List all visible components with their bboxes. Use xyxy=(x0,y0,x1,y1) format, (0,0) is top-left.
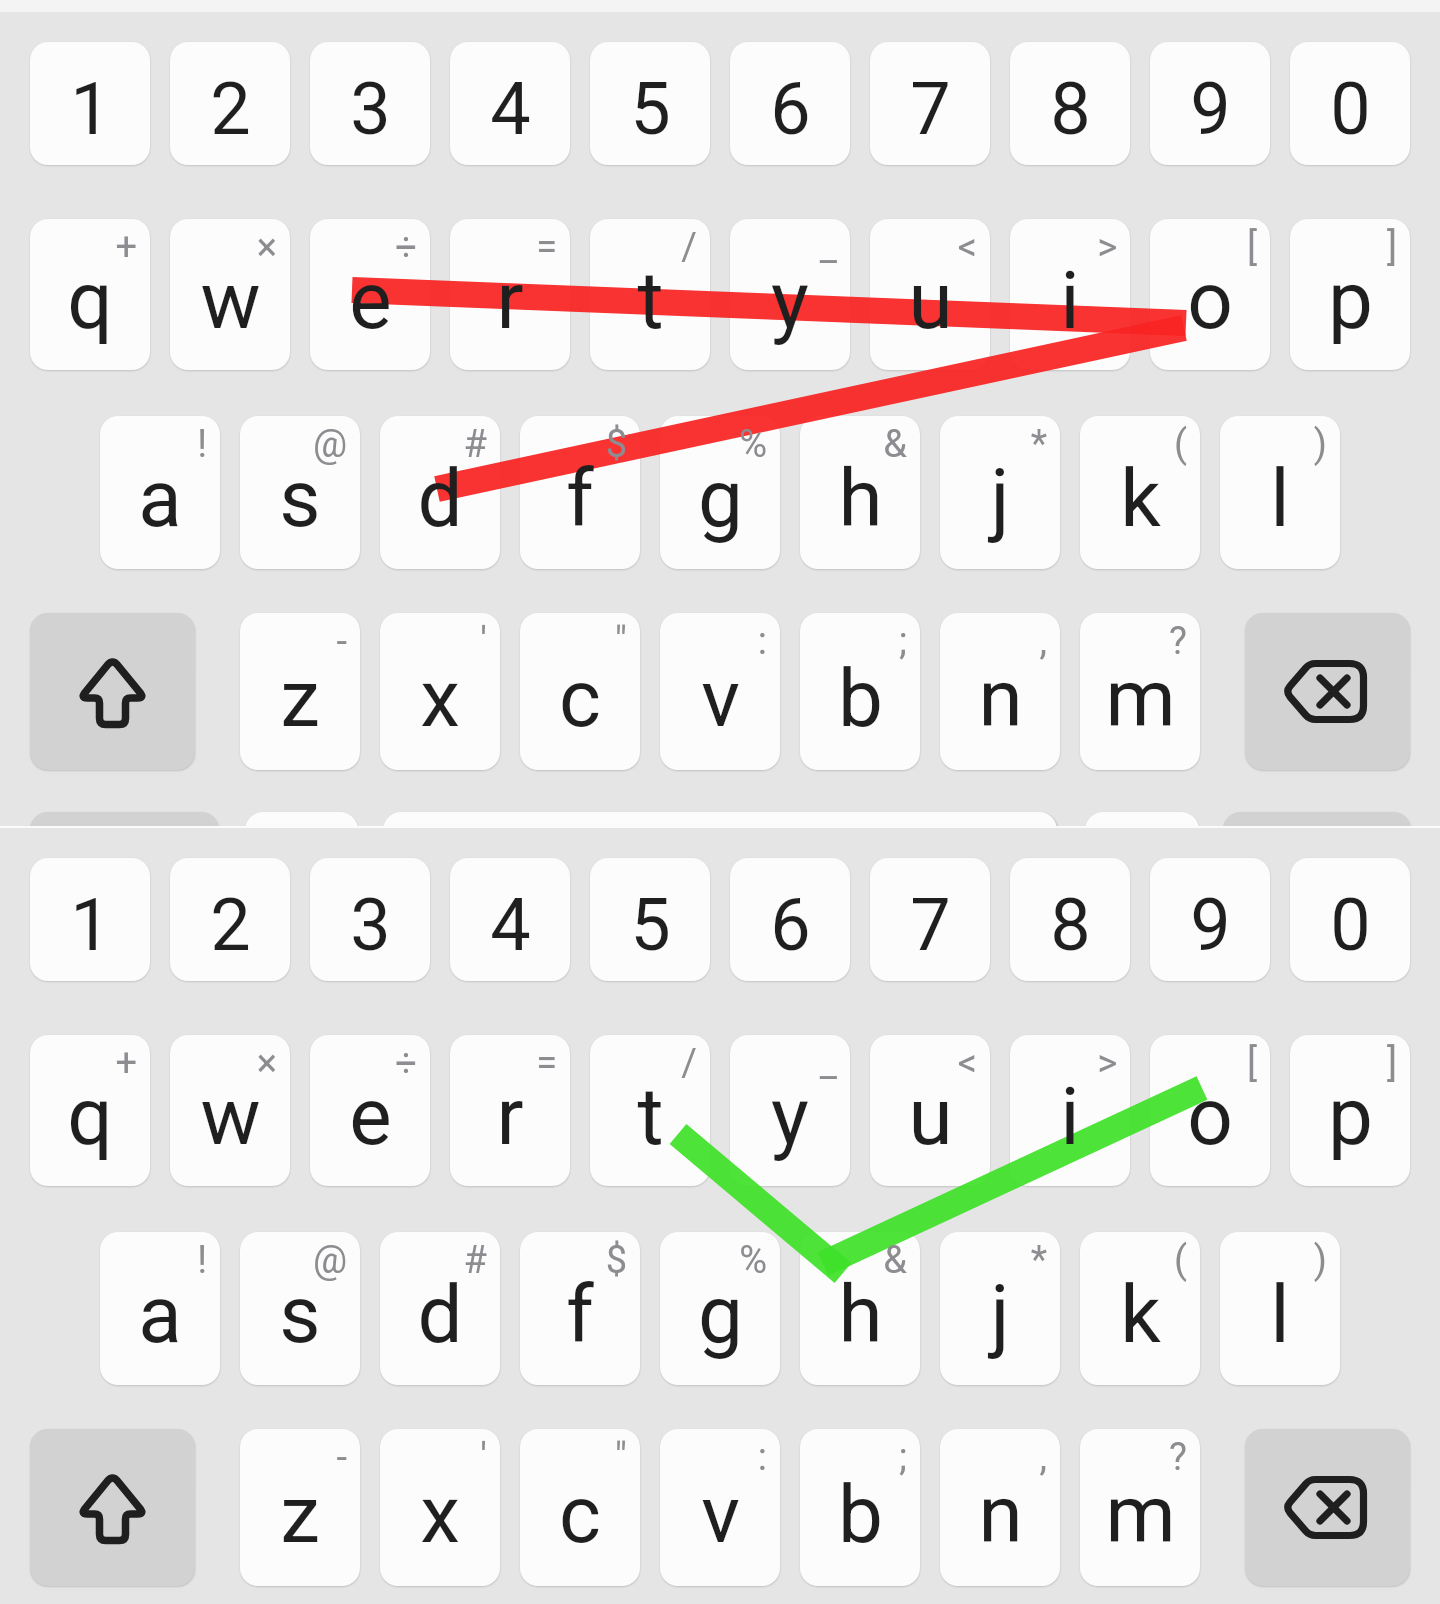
button[interactable] xyxy=(450,42,570,165)
button[interactable]: Shift xyxy=(30,1429,195,1586)
button[interactable] xyxy=(170,219,290,370)
staticText: y xyxy=(771,1070,809,1164)
button[interactable] xyxy=(1290,858,1410,981)
staticText: ] xyxy=(1386,225,1397,270)
button[interactable] xyxy=(730,1035,850,1186)
button[interactable] xyxy=(660,613,780,770)
button[interactable]: Comma xyxy=(245,812,358,826)
button[interactable] xyxy=(660,1232,780,1385)
button[interactable] xyxy=(170,858,290,981)
button[interactable] xyxy=(940,1232,1060,1385)
button[interactable] xyxy=(100,1232,220,1385)
button[interactable] xyxy=(30,1035,150,1186)
staticText: * xyxy=(1030,422,1047,467)
button[interactable]: Backspace xyxy=(1245,613,1410,770)
button[interactable] xyxy=(1080,1232,1200,1385)
button[interactable] xyxy=(940,416,1060,569)
button[interactable] xyxy=(310,858,430,981)
button[interactable] xyxy=(870,1035,990,1186)
staticText: d xyxy=(417,1268,463,1362)
button[interactable] xyxy=(1290,219,1410,370)
staticText: f xyxy=(566,452,594,546)
button[interactable] xyxy=(730,858,850,981)
staticText: + xyxy=(115,1041,137,1086)
button[interactable]: Backspace xyxy=(1245,1429,1410,1586)
button[interactable] xyxy=(240,1429,360,1586)
button[interactable] xyxy=(1290,42,1410,165)
button[interactable] xyxy=(800,416,920,569)
button[interactable] xyxy=(170,42,290,165)
button[interactable] xyxy=(1150,42,1270,165)
staticText: > xyxy=(1097,1041,1117,1086)
button[interactable] xyxy=(590,219,710,370)
button[interactable] xyxy=(730,42,850,165)
staticText: $ xyxy=(605,1238,627,1283)
button[interactable]: Period xyxy=(1085,812,1199,826)
staticText: y xyxy=(771,254,809,348)
button[interactable] xyxy=(1150,1035,1270,1186)
button[interactable] xyxy=(30,219,150,370)
staticText: / xyxy=(681,1041,697,1086)
button[interactable] xyxy=(660,416,780,569)
button[interactable] xyxy=(1080,1429,1200,1586)
button[interactable] xyxy=(1080,613,1200,770)
button[interactable]: Shift xyxy=(30,613,195,770)
button[interactable] xyxy=(520,1429,640,1586)
button[interactable] xyxy=(240,416,360,569)
button[interactable] xyxy=(800,1232,920,1385)
button[interactable] xyxy=(660,1429,780,1586)
button[interactable] xyxy=(1220,1232,1340,1385)
button[interactable] xyxy=(590,1035,710,1186)
button[interactable] xyxy=(30,42,150,165)
button[interactable]: Space xyxy=(383,812,1057,826)
button[interactable] xyxy=(1010,42,1130,165)
button[interactable] xyxy=(170,1035,290,1186)
staticText: z xyxy=(280,1468,320,1562)
button[interactable] xyxy=(520,613,640,770)
button[interactable] xyxy=(590,42,710,165)
button[interactable] xyxy=(870,42,990,165)
button[interactable] xyxy=(1010,858,1130,981)
button[interactable] xyxy=(520,1232,640,1385)
button[interactable] xyxy=(100,416,220,569)
button[interactable] xyxy=(590,858,710,981)
button[interactable]: Enter xyxy=(1223,812,1411,826)
button[interactable]: Symbols xyxy=(30,812,219,826)
button[interactable] xyxy=(310,42,430,165)
button[interactable] xyxy=(1010,1035,1130,1186)
button[interactable] xyxy=(450,1035,570,1186)
button[interactable] xyxy=(870,219,990,370)
button[interactable] xyxy=(1150,219,1270,370)
staticText: ) xyxy=(1313,422,1327,467)
button[interactable] xyxy=(520,416,640,569)
button[interactable] xyxy=(240,1232,360,1385)
button[interactable] xyxy=(940,1429,1060,1586)
staticText: = xyxy=(536,225,557,270)
button[interactable] xyxy=(730,219,850,370)
button[interactable] xyxy=(1150,858,1270,981)
button[interactable] xyxy=(940,613,1060,770)
button[interactable] xyxy=(380,1429,500,1586)
button[interactable] xyxy=(800,1429,920,1586)
staticText: ] xyxy=(1386,1041,1397,1086)
button[interactable] xyxy=(30,858,150,981)
button[interactable] xyxy=(1080,416,1200,569)
staticText: 9 xyxy=(1190,883,1231,967)
button[interactable] xyxy=(310,219,430,370)
staticText: × xyxy=(256,225,277,270)
staticText: 2 xyxy=(210,67,251,151)
button[interactable] xyxy=(310,1035,430,1186)
staticText: 5 xyxy=(630,67,671,151)
button[interactable] xyxy=(450,219,570,370)
button[interactable] xyxy=(380,1232,500,1385)
button[interactable] xyxy=(870,858,990,981)
button[interactable] xyxy=(450,858,570,981)
button[interactable] xyxy=(800,613,920,770)
button[interactable] xyxy=(1290,1035,1410,1186)
button[interactable] xyxy=(1010,219,1130,370)
staticText: v xyxy=(701,652,740,746)
button[interactable] xyxy=(1220,416,1340,569)
button[interactable] xyxy=(380,613,500,770)
button[interactable] xyxy=(380,416,500,569)
button[interactable] xyxy=(240,613,360,770)
